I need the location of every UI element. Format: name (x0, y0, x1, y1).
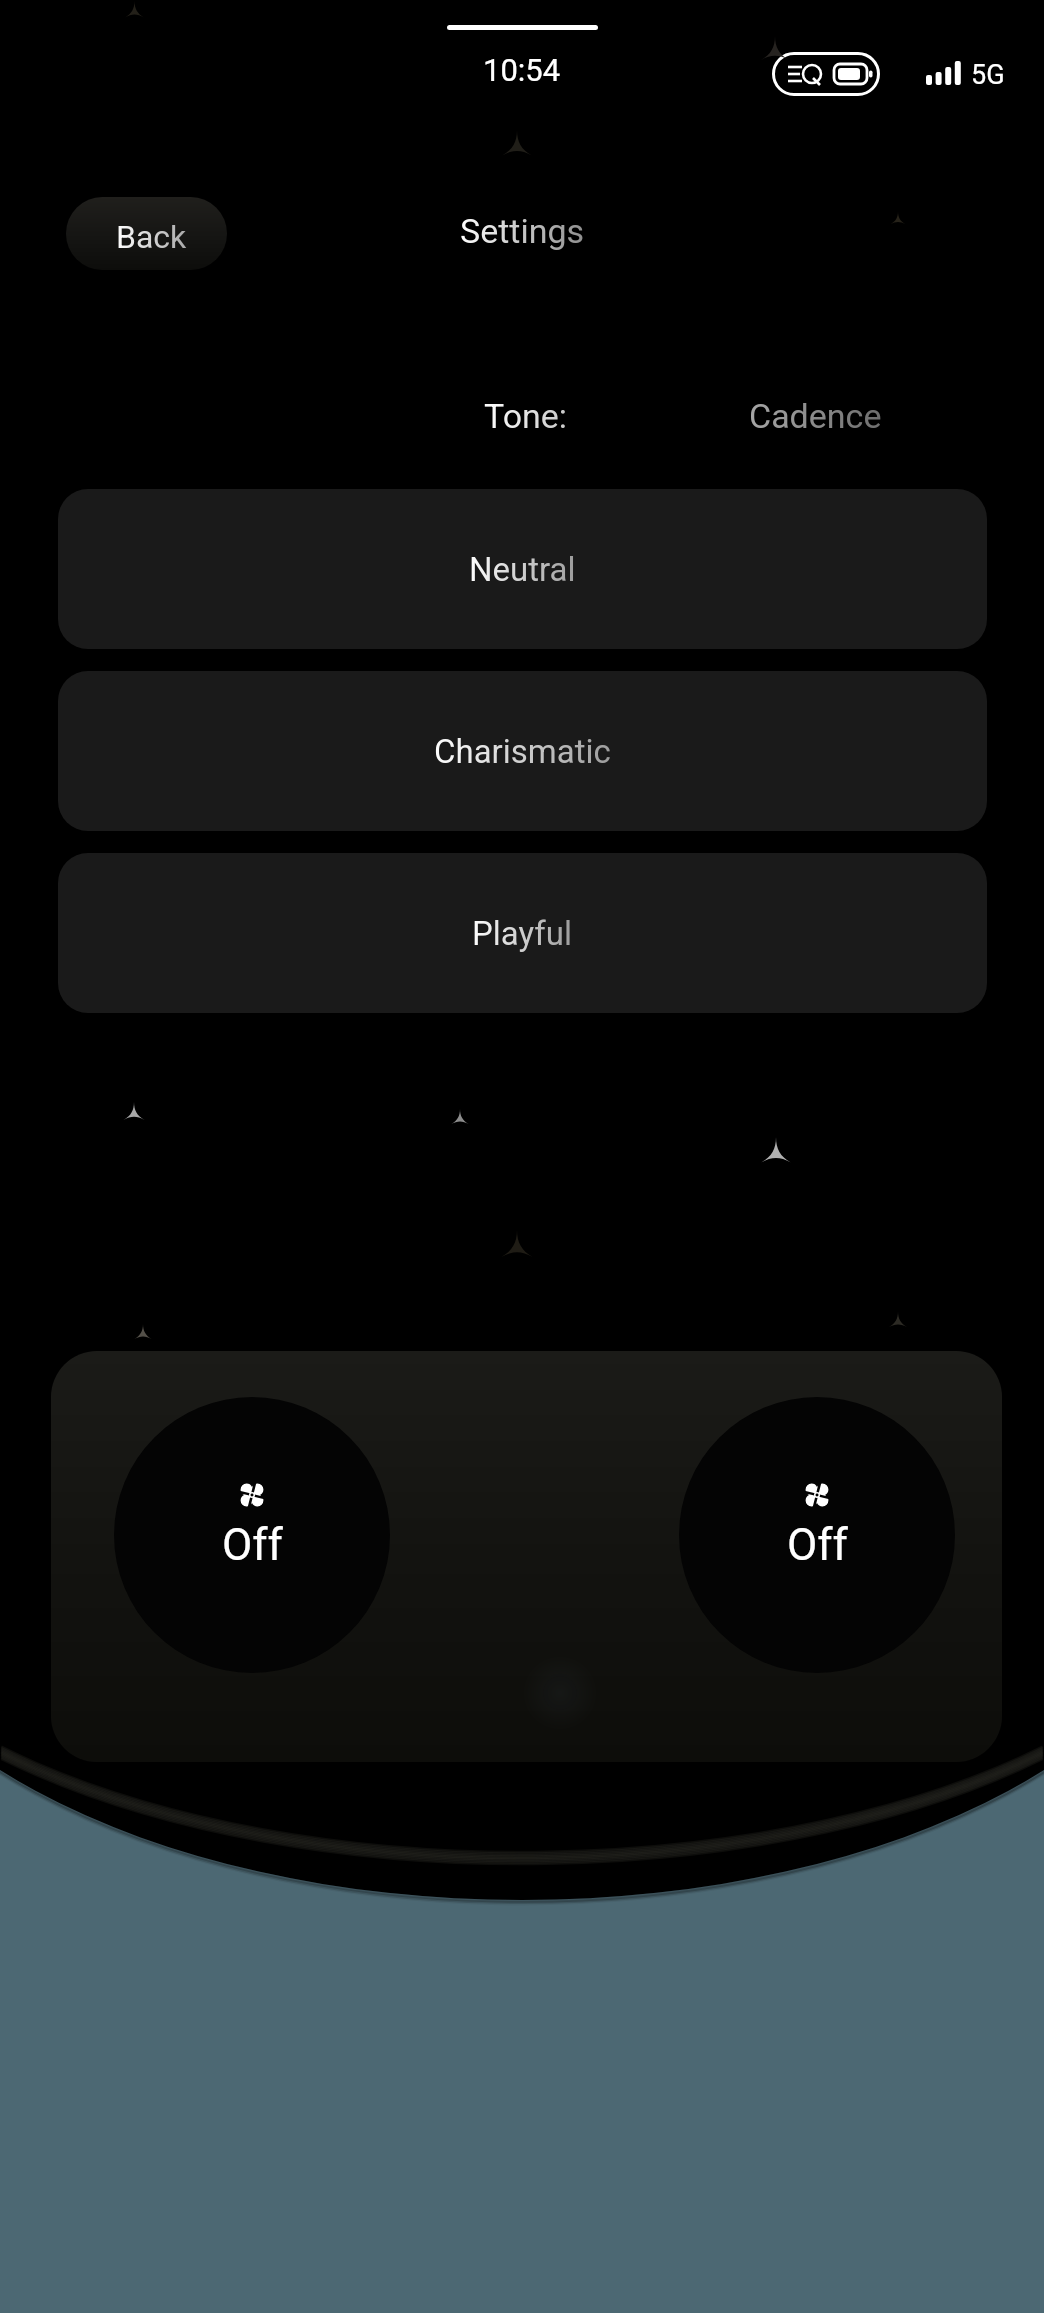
button[interactable]: Neutral (58, 489, 987, 649)
staticText: Cadence (749, 396, 882, 436)
staticText: Back (116, 218, 187, 256)
staticText: Neutral (469, 550, 576, 589)
staticText: Tone: (484, 396, 568, 436)
staticText: 5G (971, 59, 1005, 91)
button[interactable]: Fan speed off (679, 1397, 955, 1673)
staticText: Settings (460, 211, 585, 251)
staticText: Charismatic (434, 732, 611, 771)
button[interactable]: Playful (58, 853, 987, 1013)
staticText: Off (222, 1519, 283, 1571)
button[interactable]: Equaliser and battery (772, 52, 880, 96)
staticText: Playful (472, 914, 573, 953)
button[interactable]: Charismatic (58, 671, 987, 831)
staticText: 10:54 (483, 52, 561, 88)
button[interactable]: Fan speed off (114, 1397, 390, 1673)
staticText: Off (787, 1519, 848, 1571)
button[interactable]: Back (66, 197, 227, 270)
